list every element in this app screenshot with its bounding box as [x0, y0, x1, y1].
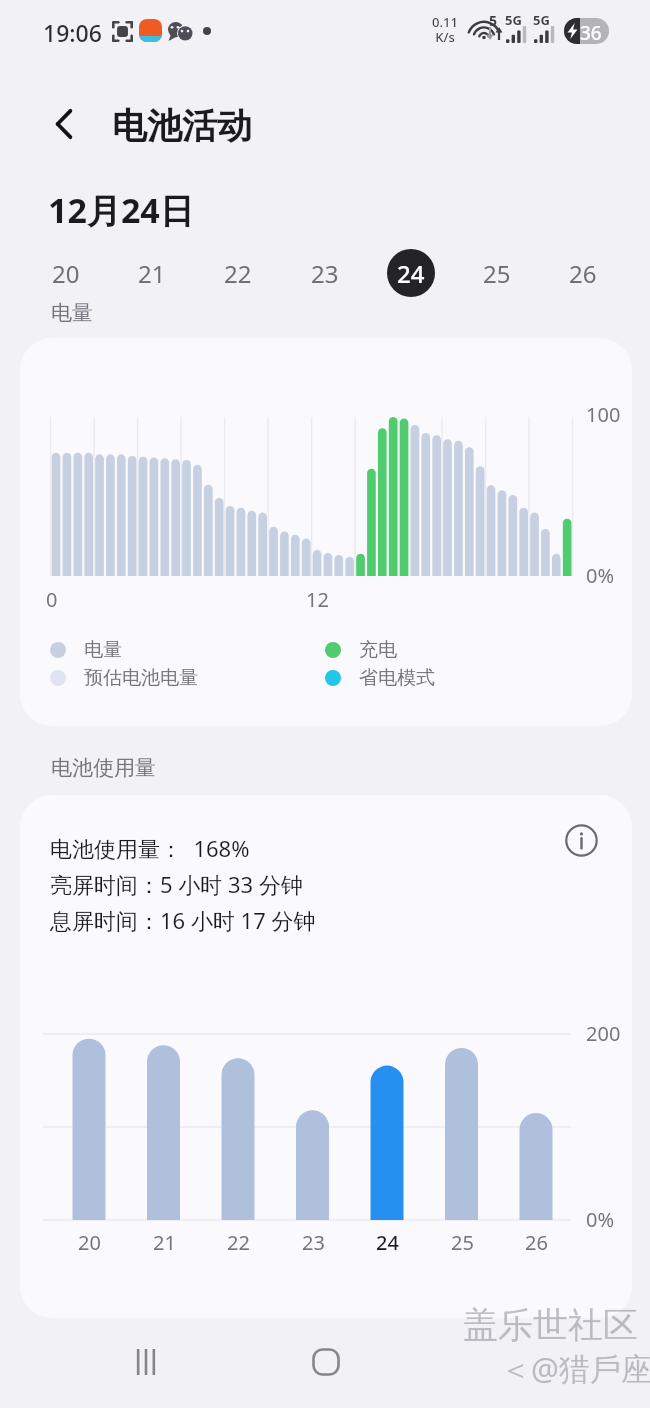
- staticText: 盖乐世社区: [463, 1303, 638, 1347]
- button[interactable]: 23: [301, 249, 349, 297]
- staticText: 0: [46, 586, 58, 613]
- staticText: 23: [302, 1229, 325, 1256]
- staticText: 26: [569, 257, 597, 290]
- staticText: 电池使用量： 168%: [50, 833, 250, 863]
- button[interactable]: 26: [559, 249, 607, 297]
- staticText: 亮屏时间：5 小时 33 分钟: [50, 869, 303, 899]
- staticText: 12月24日: [48, 187, 194, 233]
- button[interactable]: 22: [214, 249, 262, 297]
- button[interactable]: Info: [557, 816, 605, 864]
- staticText: 25: [451, 1229, 474, 1256]
- staticText: 36: [580, 20, 602, 44]
- staticText: 19:06: [43, 17, 102, 48]
- staticText: 电池活动: [112, 104, 252, 148]
- staticText: 电量: [51, 300, 93, 326]
- staticText: 22: [227, 1229, 250, 1256]
- staticText: 26: [525, 1229, 548, 1256]
- staticText: 5G: [505, 11, 522, 29]
- staticText: 25: [483, 257, 511, 290]
- button[interactable]: 25: [473, 249, 521, 297]
- staticText: 0%: [586, 1206, 615, 1233]
- staticText: 息屏时间：16 小时 17 分钟: [50, 905, 316, 935]
- staticText: 电池使用量: [51, 755, 156, 781]
- staticText: 22: [224, 257, 252, 290]
- staticText: 预估电池电量: [84, 666, 198, 690]
- staticText: 21: [138, 257, 166, 290]
- staticText: 充电: [359, 638, 397, 662]
- staticText: 24: [397, 257, 425, 290]
- staticText: 24: [376, 1229, 399, 1256]
- button[interactable]: Back: [38, 98, 90, 150]
- staticText: 12: [306, 586, 329, 613]
- button[interactable]: Home: [296, 1332, 356, 1392]
- staticText: 0%: [586, 562, 615, 589]
- staticText: ＜@猎戶座: [500, 1347, 650, 1389]
- staticText: 省电模式: [359, 666, 435, 690]
- staticText: 100: [586, 401, 621, 428]
- button[interactable]: 24: [387, 249, 435, 297]
- staticText: 23: [311, 257, 339, 290]
- staticText: 200: [586, 1020, 621, 1047]
- staticText: 20: [78, 1229, 101, 1256]
- staticText: 5: [489, 11, 498, 30]
- staticText: 20: [52, 257, 80, 290]
- staticText: 21: [153, 1229, 176, 1256]
- button[interactable]: 21: [128, 249, 176, 297]
- staticText: 5G: [533, 11, 550, 29]
- button[interactable]: Recent apps: [116, 1332, 176, 1392]
- staticText: 0.11 K/s: [432, 13, 458, 46]
- staticText: 电量: [84, 638, 122, 662]
- button[interactable]: 20: [42, 249, 90, 297]
